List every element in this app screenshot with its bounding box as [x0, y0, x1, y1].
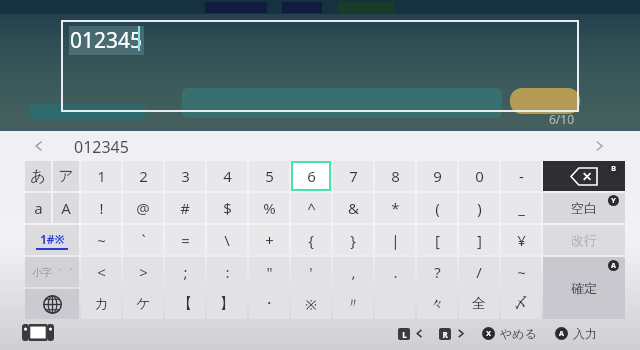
- button[interactable]: ?: [417, 257, 457, 287]
- button[interactable]: 2: [123, 161, 163, 191]
- button[interactable]: :: [207, 257, 247, 287]
- staticText: }: [350, 230, 356, 250]
- button[interactable]: Console: [22, 324, 54, 341]
- staticText: :: [225, 262, 230, 282]
- button[interactable]: 々: [417, 289, 457, 319]
- staticText: ?: [434, 262, 441, 282]
- staticText: 012345: [74, 136, 129, 158]
- button[interactable]: _: [501, 193, 541, 223]
- staticText: |: [391, 230, 400, 250]
- button[interactable]: \: [207, 225, 247, 255]
- button[interactable]: 9: [417, 161, 457, 191]
- staticText: ※: [305, 295, 317, 314]
- button[interactable]: %: [249, 193, 289, 223]
- staticText: ;: [183, 262, 188, 282]
- button[interactable]: !: [81, 193, 121, 223]
- staticText: $: [223, 198, 232, 218]
- staticText: 2: [139, 166, 148, 186]
- button[interactable]: ¥: [501, 225, 541, 255]
- staticText: 】: [220, 295, 234, 313]
- button[interactable]: ケ: [123, 289, 163, 319]
- button[interactable]: a: [25, 193, 51, 223]
- button[interactable]: 012345: [61, 20, 579, 112]
- button[interactable]: `: [123, 225, 163, 255]
- button[interactable]: 1#※: [25, 225, 79, 255]
- staticText: ): [477, 198, 482, 218]
- staticText: やめる: [500, 326, 537, 341]
- staticText: /: [476, 262, 482, 282]
- button[interactable]: 5: [249, 161, 289, 191]
- button[interactable]: A: [555, 326, 597, 341]
- button[interactable]: 6: [291, 161, 331, 191]
- button[interactable]: (: [417, 193, 457, 223]
- button[interactable]: 【: [165, 289, 205, 319]
- staticText: X: [486, 329, 491, 339]
- button[interactable]: Backspace: [543, 161, 625, 191]
- button[interactable]: *: [375, 193, 415, 223]
- button[interactable]: X: [482, 326, 537, 341]
- button[interactable]: $: [207, 193, 247, 223]
- button[interactable]: 】: [207, 289, 247, 319]
- button[interactable]: 0: [459, 161, 499, 191]
- staticText: +: [265, 230, 274, 250]
- staticText: ~: [517, 262, 526, 282]
- staticText: -: [519, 166, 524, 186]
- button[interactable]: {: [291, 225, 331, 255]
- staticText: 小字゛゜: [32, 266, 73, 279]
- button[interactable]: ~: [501, 257, 541, 287]
- button[interactable]: +: [249, 225, 289, 255]
- staticText: \: [224, 230, 230, 250]
- button[interactable]: ,: [333, 257, 373, 287]
- button[interactable]: ]: [459, 225, 499, 255]
- staticText: ]: [477, 230, 482, 250]
- button[interactable]: Language: [25, 289, 79, 319]
- staticText: 々: [430, 295, 444, 313]
- button[interactable]: ※: [291, 289, 331, 319]
- button[interactable]: Previous: [32, 139, 46, 153]
- button[interactable]: &: [333, 193, 373, 223]
- staticText: 6: [307, 166, 316, 186]
- button[interactable]: 7: [333, 161, 373, 191]
- staticText: {: [308, 230, 314, 250]
- button[interactable]: 8: [375, 161, 415, 191]
- button[interactable]: Next: [592, 139, 606, 153]
- button[interactable]: |: [375, 225, 415, 255]
- button[interactable]: 3: [165, 161, 205, 191]
- button[interactable]: カ: [81, 289, 121, 319]
- button[interactable]: -: [501, 161, 541, 191]
- button[interactable]: ~: [81, 225, 121, 255]
- button[interactable]: /: [459, 257, 499, 287]
- button[interactable]: 〃: [333, 289, 373, 319]
- button[interactable]: ;: [165, 257, 205, 287]
- button[interactable]: 1: [81, 161, 121, 191]
- button[interactable]: ・: [249, 289, 289, 319]
- button[interactable]: 空白: [543, 193, 625, 223]
- button[interactable]: ': [291, 257, 331, 287]
- staticText: 入力: [573, 326, 597, 341]
- button[interactable]: ア: [53, 161, 79, 191]
- button[interactable]: ^: [291, 193, 331, 223]
- button[interactable]: 〆: [501, 289, 541, 319]
- button[interactable]: 確定: [543, 257, 625, 319]
- button[interactable]: @: [123, 193, 163, 223]
- staticText: 確定: [571, 280, 597, 296]
- button[interactable]: 全: [459, 289, 499, 319]
- button[interactable]: A: [53, 193, 79, 223]
- button[interactable]: 4: [207, 161, 247, 191]
- staticText: *: [391, 198, 400, 218]
- staticText: _: [518, 198, 525, 218]
- button[interactable]: >: [123, 257, 163, 287]
- button[interactable]: あ: [25, 161, 51, 191]
- button[interactable]: =: [165, 225, 205, 255]
- button[interactable]: ): [459, 193, 499, 223]
- button[interactable]: .: [375, 257, 415, 287]
- button[interactable]: }: [333, 225, 373, 255]
- button[interactable]: ": [249, 257, 289, 287]
- staticText: 8: [391, 166, 400, 186]
- button[interactable]: 小字゛゜: [25, 257, 79, 287]
- button[interactable]: 改行: [543, 225, 625, 255]
- button[interactable]: [: [417, 225, 457, 255]
- button[interactable]: #: [165, 193, 205, 223]
- button[interactable]: <: [81, 257, 121, 287]
